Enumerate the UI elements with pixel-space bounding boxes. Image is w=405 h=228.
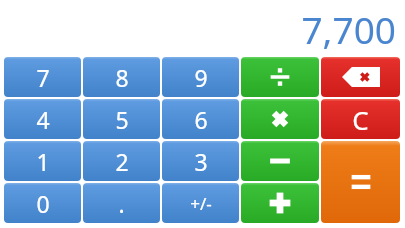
button[interactable]: Divide: [241, 57, 319, 97]
staticText: 7: [36, 62, 50, 93]
button[interactable]: 0: [4, 183, 81, 223]
button[interactable]: Multiply: [241, 99, 319, 139]
staticText: 0: [36, 188, 50, 219]
button[interactable]: C: [321, 99, 400, 139]
staticText: .: [118, 188, 125, 219]
button[interactable]: 2: [83, 141, 160, 181]
button[interactable]: 7: [4, 57, 81, 97]
button[interactable]: 5: [83, 99, 160, 139]
staticText: 4: [36, 104, 50, 135]
staticText: 9: [194, 62, 208, 93]
staticText: +/-: [190, 192, 212, 215]
button[interactable]: 9: [162, 57, 239, 97]
button[interactable]: 8: [83, 57, 160, 97]
button[interactable]: 3: [162, 141, 239, 181]
staticText: 6: [194, 104, 208, 135]
staticText: 3: [194, 146, 208, 177]
staticText: C: [352, 102, 369, 137]
button[interactable]: 1: [4, 141, 81, 181]
button[interactable]: +/-: [162, 183, 239, 223]
button[interactable]: Backspace: [321, 57, 400, 97]
button[interactable]: Minus: [241, 141, 319, 181]
staticText: 8: [115, 62, 129, 93]
staticText: 2: [115, 146, 129, 177]
staticText: 5: [115, 104, 129, 135]
staticText: 7,700: [301, 4, 396, 54]
button[interactable]: Equals: [321, 141, 400, 223]
button[interactable]: .: [83, 183, 160, 223]
button[interactable]: 6: [162, 99, 239, 139]
button[interactable]: 4: [4, 99, 81, 139]
staticText: 1: [36, 146, 50, 177]
button[interactable]: Plus: [241, 183, 319, 223]
